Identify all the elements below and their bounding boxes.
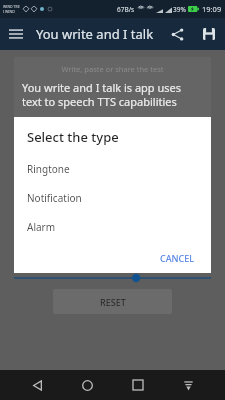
staticText: CANCEL [160, 252, 195, 264]
button[interactable]: Ringtone [14, 154, 211, 183]
button[interactable]: Back [24, 372, 50, 398]
staticText: 39% [173, 5, 186, 14]
button[interactable]: Notification [14, 183, 211, 212]
staticText: 19:09 [202, 4, 222, 14]
staticText: Ringtone [27, 162, 70, 176]
staticText: Write, paste or share the test [22, 64, 203, 74]
staticText: I WIND [3, 9, 15, 14]
button[interactable]: Alarm [14, 212, 211, 241]
staticText: You write and I talk [36, 25, 154, 43]
staticText: You write and I talk is app uses text to… [22, 80, 182, 109]
staticText: Select the type [27, 128, 119, 146]
button[interactable]: Share [161, 18, 193, 50]
button[interactable]: Speed slider [14, 273, 211, 283]
button[interactable]: Recent apps [125, 372, 151, 398]
button[interactable]: Open navigation drawer [0, 18, 32, 50]
staticText: WIND TRE [3, 4, 20, 9]
button[interactable]: CANCEL [155, 249, 200, 267]
staticText: Alarm [27, 220, 56, 234]
staticText: RESET [100, 296, 126, 308]
staticText: Notification [27, 191, 82, 205]
button[interactable]: RESET [53, 289, 172, 314]
staticText: 67B/s [117, 5, 135, 14]
button[interactable]: Save [193, 18, 225, 50]
button[interactable]: Hide keyboard [175, 372, 201, 398]
button[interactable]: Home [74, 372, 100, 398]
